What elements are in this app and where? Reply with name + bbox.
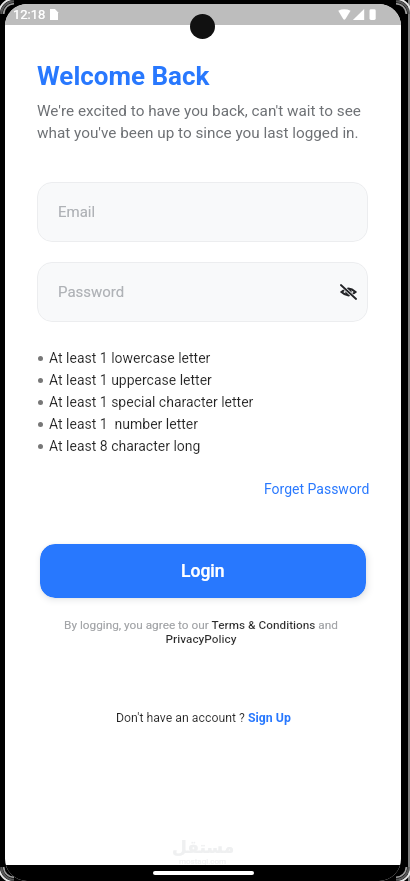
button[interactable]: Toggle password visibility: [337, 281, 359, 303]
staticText: Email: [58, 203, 96, 221]
staticText: At least 1 special character letter: [49, 394, 254, 410]
button[interactable]: Login: [40, 544, 366, 598]
staticText: Login: [181, 561, 225, 582]
staticText: At least 1 number letter: [49, 416, 198, 432]
staticText: 12:18: [13, 7, 46, 22]
staticText: We're excited to have you back, can't wa…: [37, 102, 367, 142]
staticText: Password: [58, 283, 125, 301]
staticText: Forget Password: [264, 481, 370, 497]
staticText: At least 1 lowercase letter: [49, 350, 211, 366]
button[interactable]: Don't have an account ?: [108, 706, 299, 730]
button[interactable]: Password: [37, 262, 368, 322]
staticText: Sign Up: [248, 711, 291, 725]
staticText: At least 1 uppercase letter: [49, 372, 212, 388]
staticText: Don't have an account ?: [116, 711, 248, 725]
staticText: By logging, you agree to our Terms & Con…: [51, 618, 351, 646]
staticText: mostaql.com: [179, 857, 227, 866]
button[interactable]: Forget Password: [256, 474, 378, 504]
staticText: مستقل: [172, 837, 235, 857]
button[interactable]: Email: [37, 182, 368, 242]
staticText: Welcome Back: [37, 61, 210, 91]
staticText: At least 8 character long: [49, 438, 201, 454]
